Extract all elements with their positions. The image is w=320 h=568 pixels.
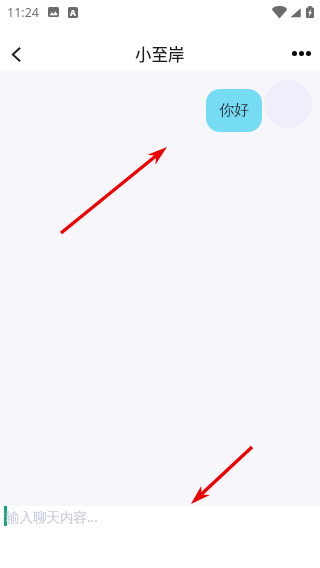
- staticText: 你好: [219, 101, 249, 120]
- button[interactable]: 你好: [206, 89, 262, 132]
- button[interactable]: More options: [281, 36, 320, 70]
- staticText: 输入聊天内容...: [6, 508, 98, 526]
- button[interactable]: 输入聊天内容...: [0, 506, 320, 530]
- staticText: A: [70, 7, 76, 18]
- staticText: 小至岸: [135, 42, 185, 66]
- staticText: 11:24: [7, 4, 39, 21]
- button[interactable]: Back: [0, 37, 31, 71]
